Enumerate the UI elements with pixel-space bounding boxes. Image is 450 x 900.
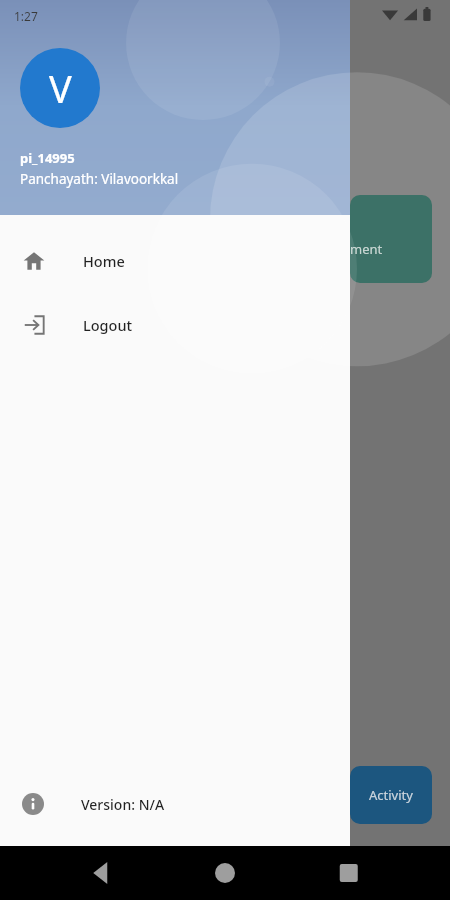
staticText: Version: N/A: [81, 795, 165, 814]
button[interactable]: Home: [0, 229, 350, 293]
button[interactable]: Logout: [0, 293, 350, 357]
button[interactable]: Activity: [350, 766, 432, 824]
button[interactable]: ment: [350, 195, 432, 283]
staticText: Logout: [83, 315, 133, 335]
staticText: Home: [83, 251, 125, 271]
staticText: V: [49, 62, 72, 114]
staticText: Panchayath: Vilavoorkkal: [20, 170, 179, 188]
staticText: pi_14995: [20, 149, 75, 167]
staticText: Activity: [369, 786, 413, 804]
button[interactable]: App version information: [0, 780, 350, 828]
staticText: 1:27: [14, 8, 38, 24]
staticText: ment: [350, 240, 383, 258]
